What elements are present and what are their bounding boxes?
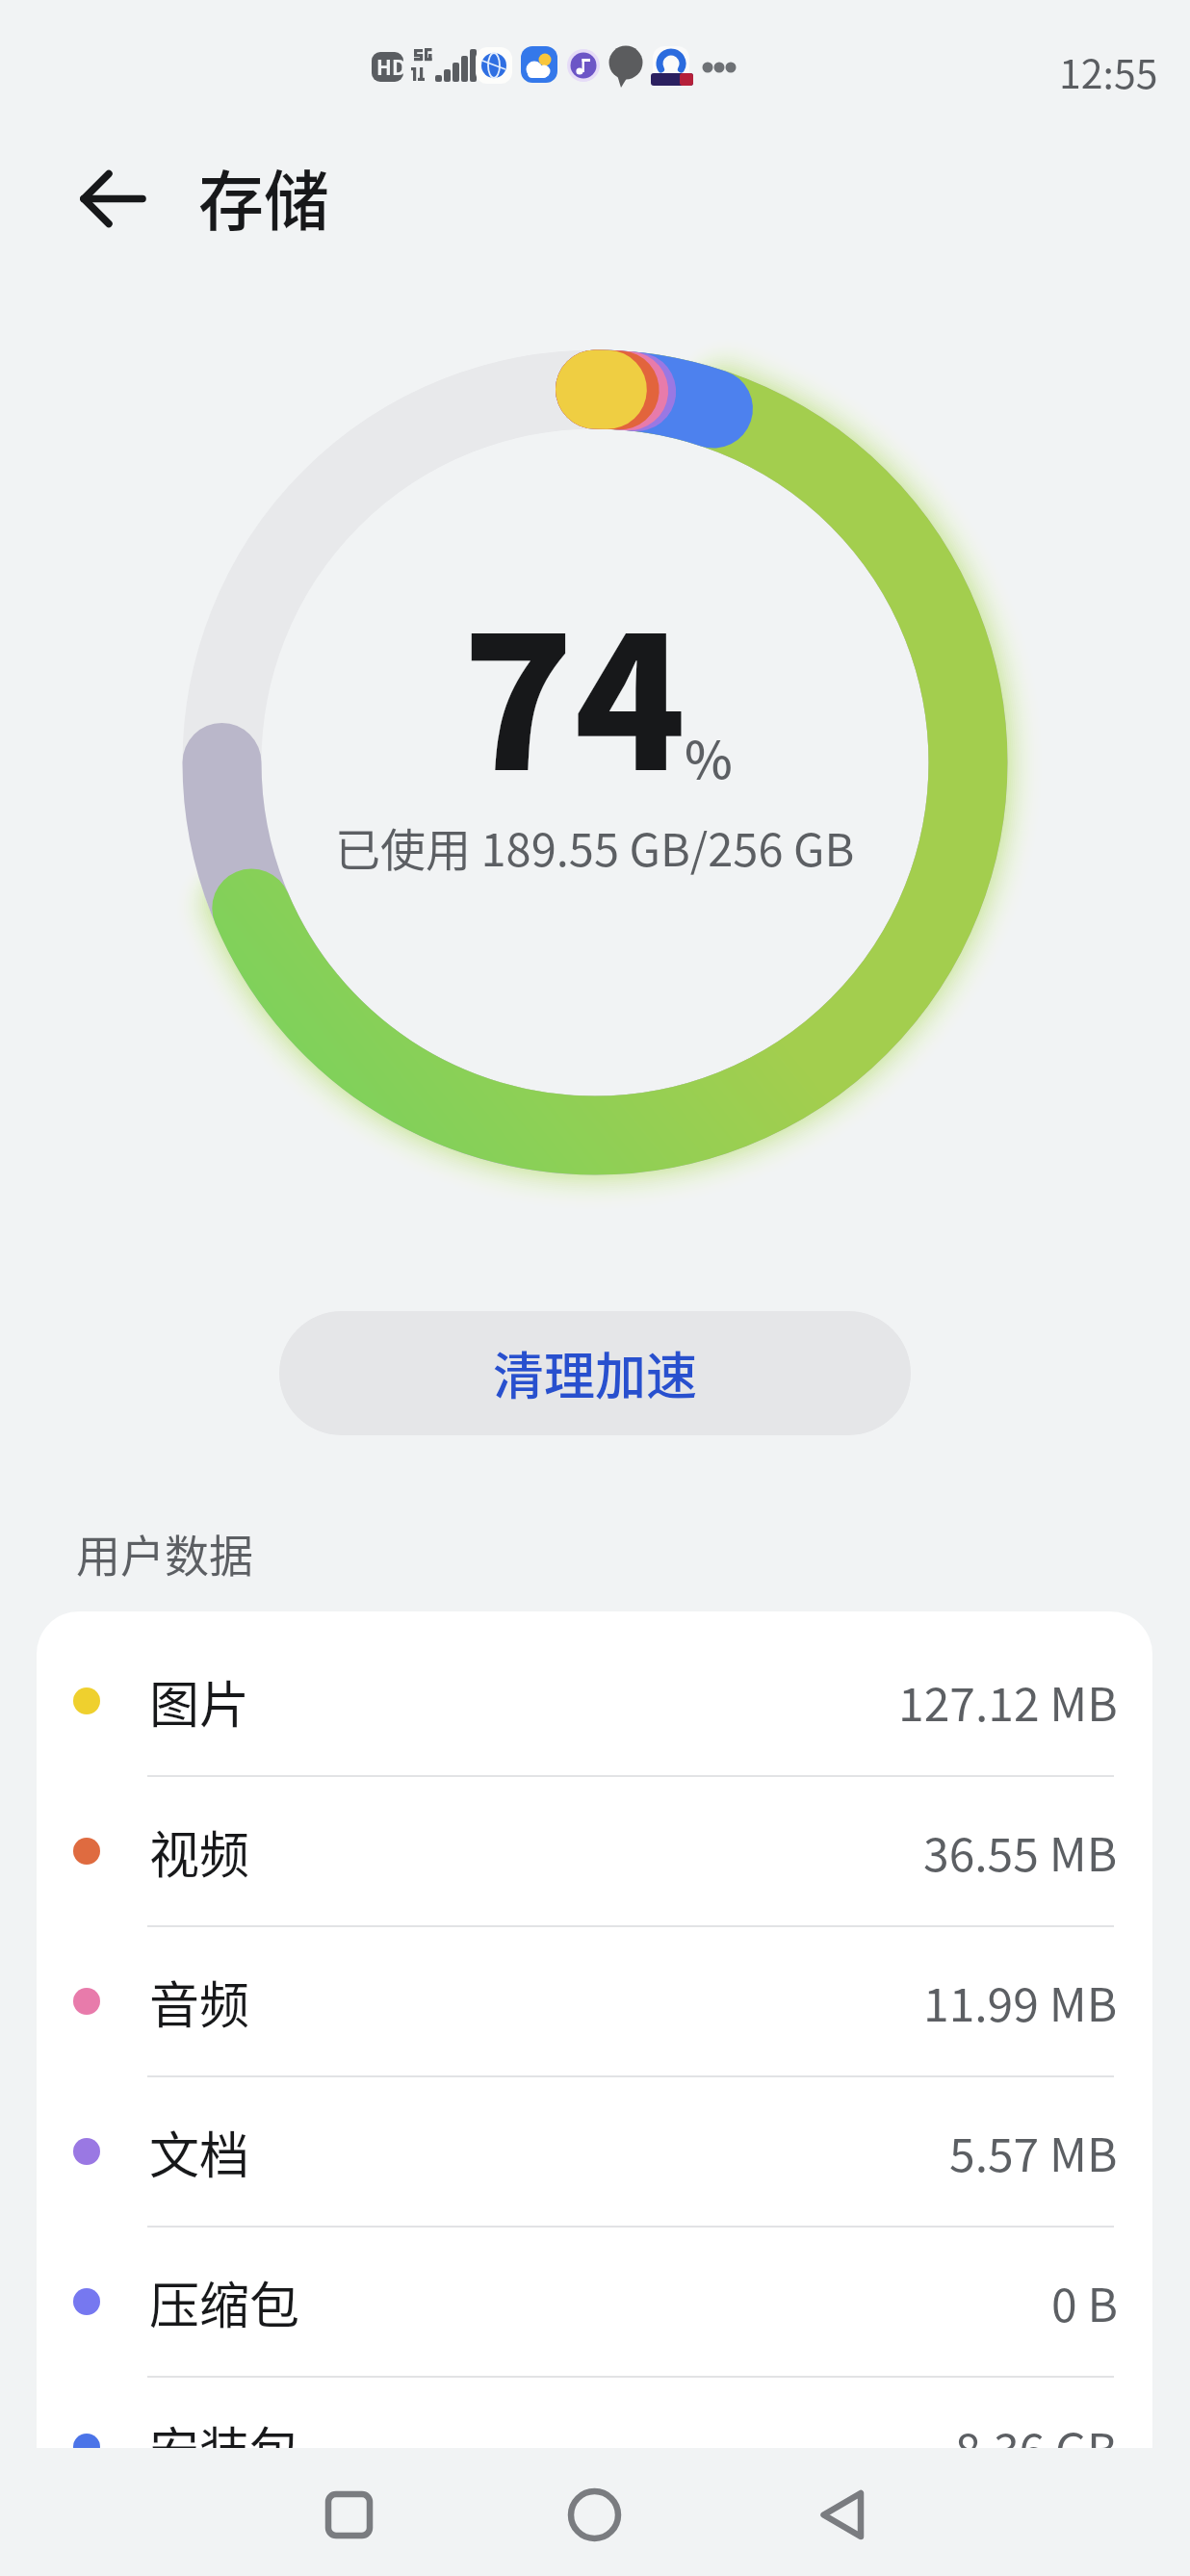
staticText: 5.57 MB [949,2118,1118,2185]
button[interactable]: Back [736,2451,952,2576]
staticText: 图片 [149,1665,250,1738]
button[interactable]: 图片 [37,1627,1152,1775]
staticText: 36.55 MB [923,1817,1118,1885]
staticText: 0 B [1051,2268,1118,2335]
button[interactable]: Home [486,2451,703,2576]
staticText: 127.12 MB [898,1667,1118,1735]
button[interactable]: 音频 [37,1927,1152,2075]
staticText: 压缩包 [149,2266,300,2338]
staticText: 文档 [149,2116,250,2188]
button[interactable]: 压缩包 [37,2228,1152,2376]
button[interactable]: Back [65,152,159,245]
staticText: 已使用 189.55 GB/256 GB [335,813,855,879]
staticText: 存储 [198,149,330,244]
staticText: 11.99 MB [923,1968,1118,2035]
button[interactable]: 安装包 [37,2378,1152,2516]
staticText: 用户数据 [76,1521,253,1585]
button[interactable]: Recents [241,2451,457,2576]
button[interactable]: 清理加速 [279,1311,911,1435]
staticText: 12:55 [1059,42,1158,99]
staticText: 74 [462,556,686,823]
staticText: 安装包 [149,2411,300,2484]
staticText: 8.36 GB [955,2413,1118,2481]
staticText: 音频 [149,1966,250,2038]
button[interactable]: 文档 [37,2077,1152,2226]
button[interactable]: 视频 [37,1777,1152,1925]
staticText: 清理加速 [493,1336,697,1410]
staticText: % [685,720,733,794]
staticText: HD [376,52,406,81]
staticText: 视频 [149,1816,250,1888]
